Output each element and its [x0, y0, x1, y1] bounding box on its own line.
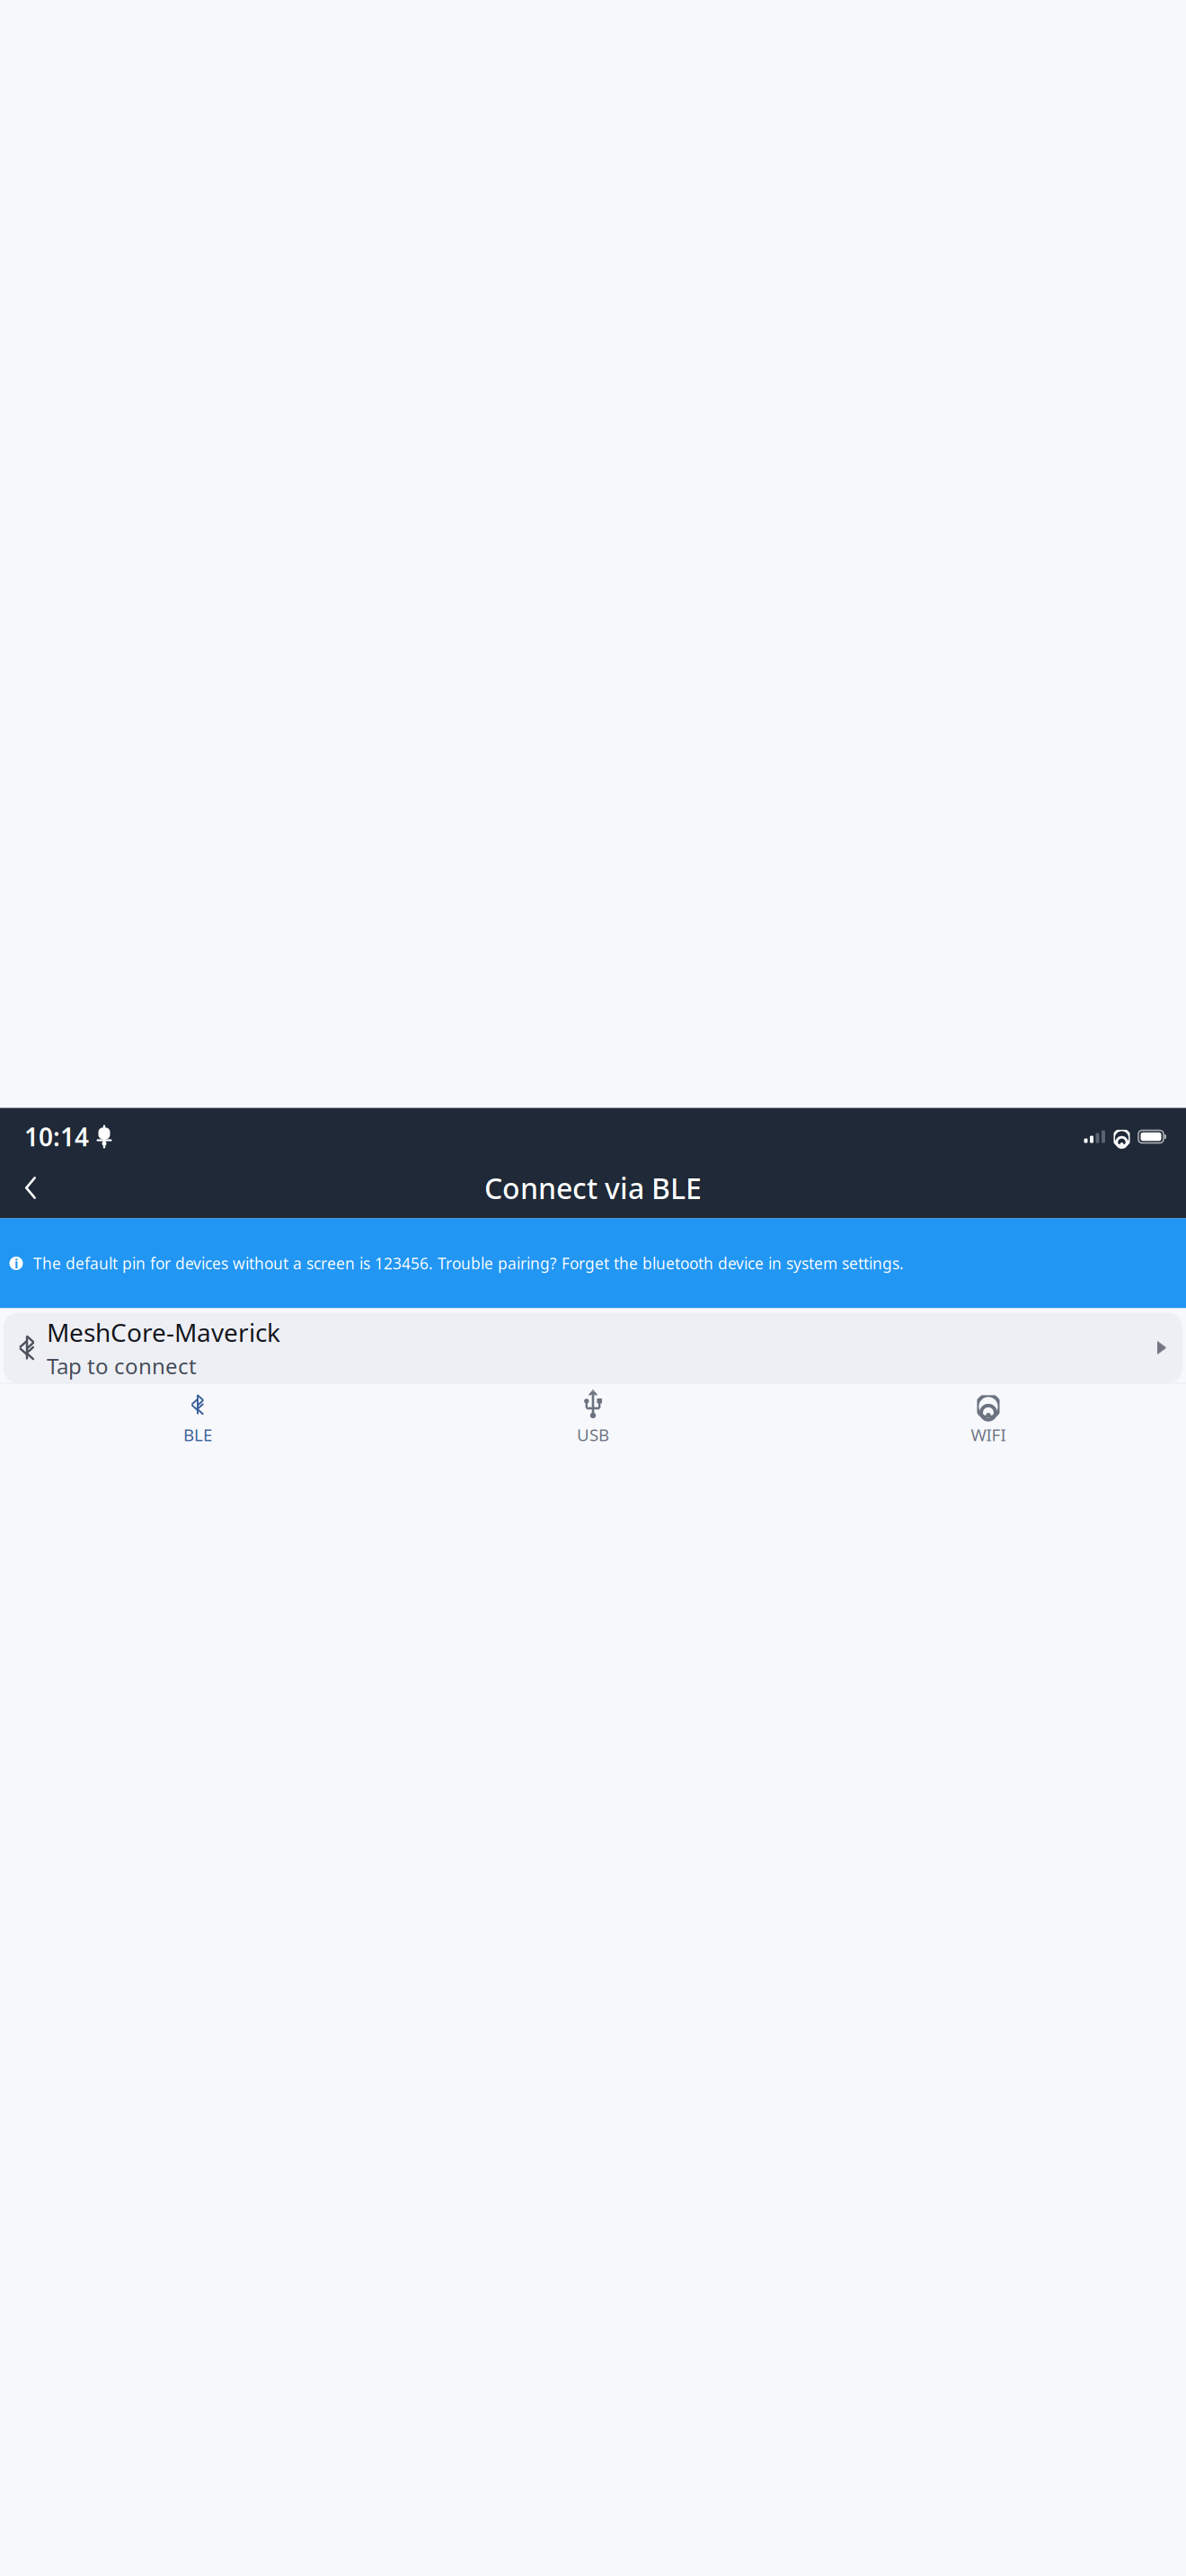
button[interactable]: WIFI	[791, 1391, 1186, 1446]
staticText: 10:14	[24, 1120, 89, 1153]
button[interactable]: Back	[7, 1165, 54, 1210]
button[interactable]: MeshCore-Maverick	[4, 1313, 1182, 1383]
staticText: Connect via BLE	[484, 1169, 702, 1207]
staticText: BLE	[183, 1424, 212, 1446]
staticText: i	[14, 1255, 18, 1272]
staticText: Tap to connect	[47, 1352, 197, 1380]
staticText: WIFI	[971, 1424, 1006, 1446]
button[interactable]: BLE	[0, 1391, 395, 1446]
staticText: USB	[577, 1424, 609, 1446]
staticText: MeshCore-Maverick	[47, 1315, 280, 1349]
button[interactable]: USB	[395, 1391, 791, 1446]
staticText: The default pin for devices without a sc…	[33, 1253, 904, 1274]
